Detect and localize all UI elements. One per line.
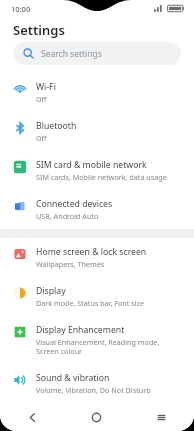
- staticText: Sound & vibration: [36, 372, 110, 384]
- button[interactable]: Recent apps: [129, 404, 194, 431]
- staticText: 10:00: [11, 4, 31, 14]
- staticText: Display Enhancement: [36, 324, 125, 336]
- button[interactable]: Display Enhancement: [0, 316, 194, 364]
- button[interactable]: Back: [0, 404, 64, 431]
- staticText: Wi-Fi: [36, 81, 56, 93]
- staticText: Settings: [13, 21, 65, 39]
- button[interactable]: SIM card & mobile network: [0, 151, 194, 190]
- button[interactable]: Home screen & lock screen: [0, 238, 194, 277]
- button[interactable]: Wi-Fi: [0, 73, 194, 112]
- button[interactable]: Display: [0, 277, 194, 316]
- staticText: Display: [36, 285, 66, 297]
- staticText: SIM cards, Mobile network, data usage: [36, 172, 167, 182]
- button[interactable]: Bluetooth: [0, 112, 194, 151]
- staticText: Off: [36, 94, 47, 104]
- staticText: Home screen & lock screen: [36, 246, 147, 258]
- staticText: Volume, Vibration, Do Not Disturb: [36, 385, 151, 395]
- staticText: Connected devices: [36, 198, 113, 210]
- staticText: USB, Android Auto: [36, 211, 99, 221]
- staticText: Off: [36, 133, 47, 143]
- staticText: Bluetooth: [36, 120, 77, 132]
- button[interactable]: Search settings: [13, 42, 181, 65]
- button[interactable]: Sound & vibration: [0, 364, 194, 403]
- staticText: SIM card & mobile network: [36, 159, 147, 171]
- staticText: Visual Enhancement, Reading mode, Screen…: [36, 337, 181, 356]
- staticText: Search settings: [41, 48, 102, 60]
- button[interactable]: Home: [64, 404, 129, 431]
- staticText: Wallpapers, Themes: [36, 259, 105, 269]
- button[interactable]: Connected devices: [0, 190, 194, 229]
- staticText: Dark mode, Status bar, Font size: [36, 298, 144, 308]
